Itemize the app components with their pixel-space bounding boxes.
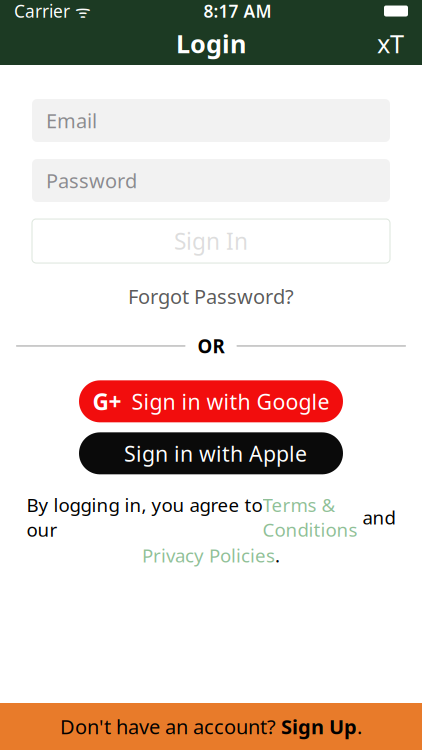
staticText: xT (377, 27, 404, 60)
button[interactable]: Terms & Conditions (262, 492, 357, 542)
staticText: Carrier (14, 0, 70, 22)
button[interactable]: Don't have an account? (0, 703, 422, 750)
button[interactable]: G+ (79, 380, 343, 422)
button[interactable]: Close (365, 19, 416, 68)
button[interactable]: Privacy Policies (142, 543, 275, 568)
staticText: and (357, 505, 395, 529)
staticText: . (357, 713, 362, 740)
staticText: OR (197, 334, 224, 358)
staticText: Don't have an account? (60, 713, 281, 740)
staticText: Login (176, 27, 246, 60)
staticText: G+ (92, 386, 121, 416)
staticText: Forgot Password? (128, 283, 294, 310)
staticText: Sign In (174, 226, 248, 256)
staticText: Privacy Policies (142, 543, 275, 568)
staticText: . (275, 543, 280, 568)
button[interactable] (79, 432, 343, 474)
staticText: Email (46, 107, 97, 134)
button[interactable]: Forgot Password? (118, 277, 304, 316)
staticText: Terms & Conditions (262, 492, 357, 542)
staticText: Sign in with Apple (124, 439, 307, 467)
staticText: Sign in with Google (131, 387, 329, 415)
button[interactable]: Sign In (32, 219, 390, 263)
staticText: Sign Up (281, 713, 357, 740)
staticText: Password (46, 167, 137, 194)
staticText: By logging in, you agree to our (26, 492, 262, 542)
staticText: 8:17 AM (203, 0, 271, 22)
staticText: ᯤ (70, 0, 91, 22)
